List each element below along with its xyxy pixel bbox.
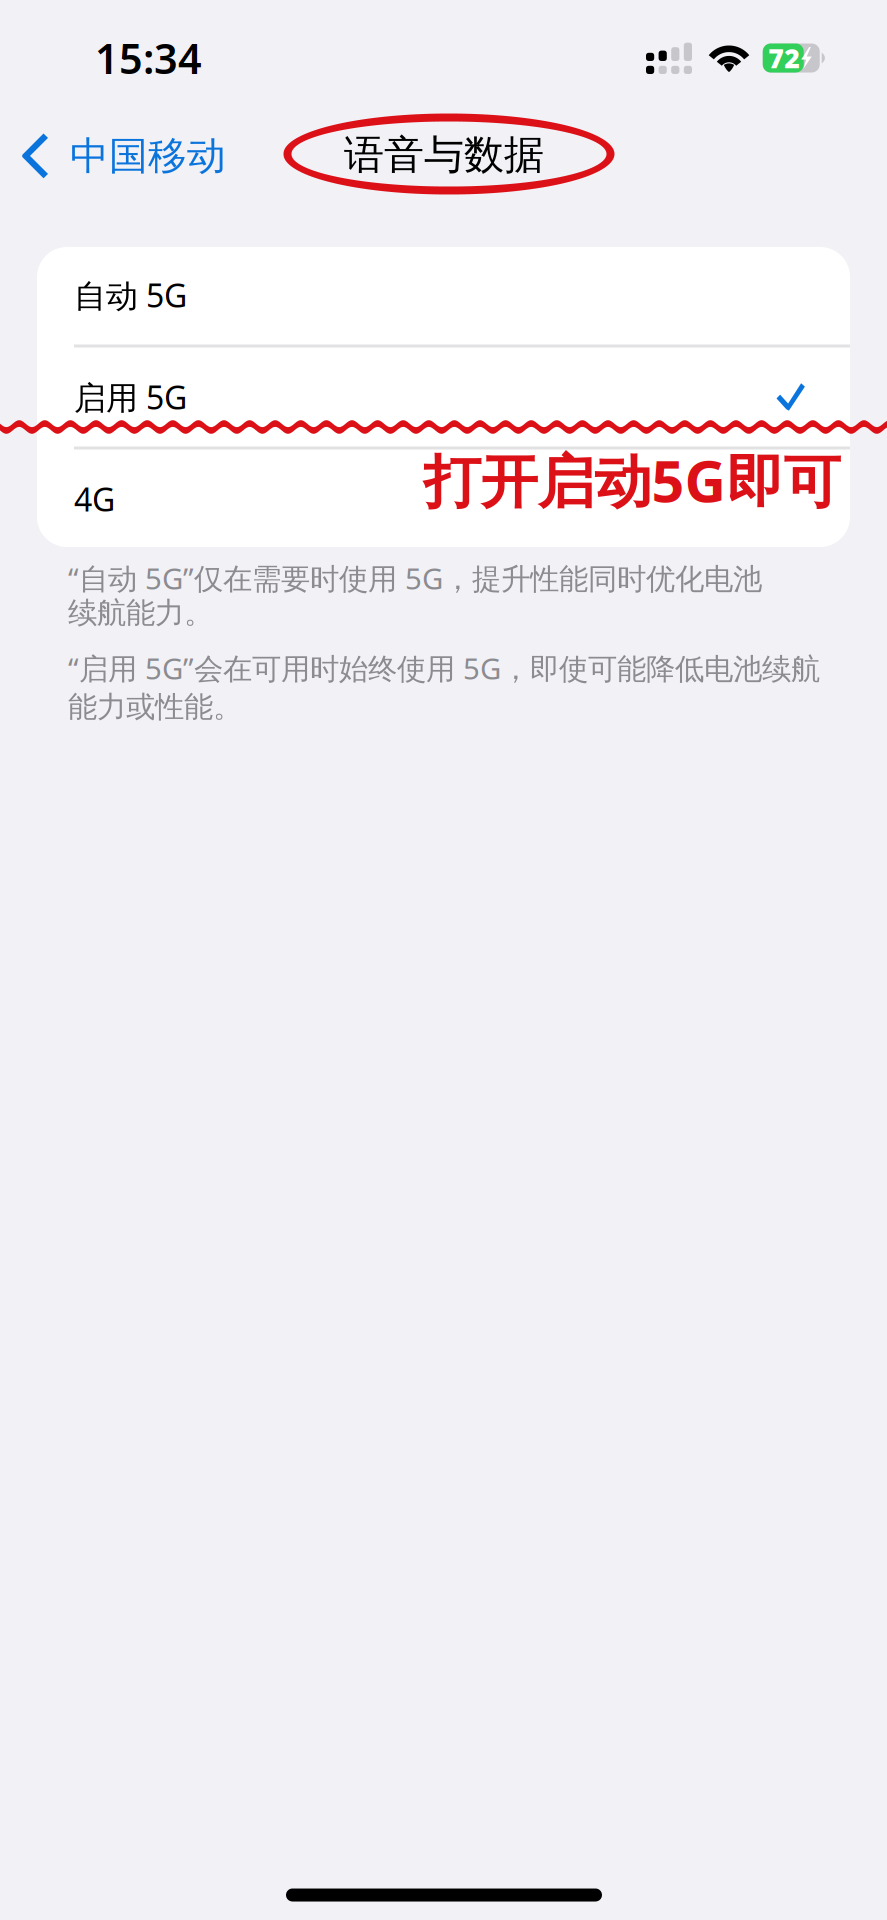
button[interactable]: 4G <box>37 449 850 548</box>
staticText: 语音与数据 <box>344 130 544 179</box>
staticText: 4G <box>74 478 115 520</box>
button[interactable]: 自动 5G <box>37 245 850 344</box>
staticText: “自动 5G”仅在需要时使用 5G，提升性能同时优化电池 <box>68 558 762 597</box>
staticText: 15:34 <box>95 31 202 85</box>
staticText: 自动 5G <box>74 274 187 316</box>
staticText: 打开启动5G即可 <box>423 442 840 518</box>
staticText: 72 <box>768 40 800 76</box>
staticText: 能力或性能。 <box>68 689 242 725</box>
staticText: “启用 5G”会在可用时始终使用 5G，即使可能降低电池续航 <box>68 648 820 687</box>
staticText: 中国移动 <box>70 132 226 180</box>
button[interactable]: 中国移动 <box>0 110 300 202</box>
staticText: 续航能力。 <box>68 595 213 631</box>
button[interactable]: 启用 5G <box>37 347 850 446</box>
staticText: 启用 5G <box>74 376 187 418</box>
